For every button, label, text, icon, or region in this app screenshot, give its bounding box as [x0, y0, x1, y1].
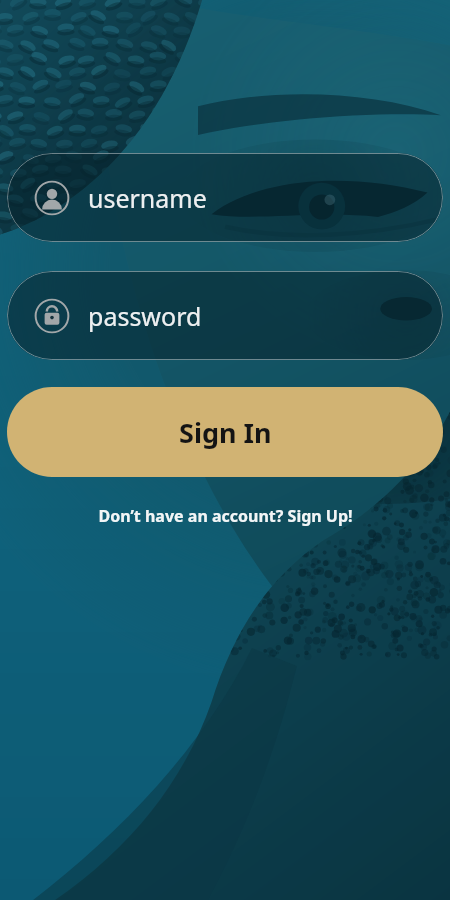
staticText: Don’t have an account? Sign Up! — [98, 505, 353, 527]
button[interactable]: Password — [7, 271, 443, 360]
staticText: Sign In — [179, 414, 272, 451]
staticText: password — [88, 299, 202, 333]
other: Password — [34, 298, 70, 334]
other: Username — [34, 180, 70, 216]
button[interactable]: Don’t have an account? Sign Up! — [7, 505, 443, 527]
button[interactable]: Username — [7, 153, 443, 242]
button[interactable]: Sign In — [7, 387, 443, 477]
staticText: username — [88, 181, 207, 215]
